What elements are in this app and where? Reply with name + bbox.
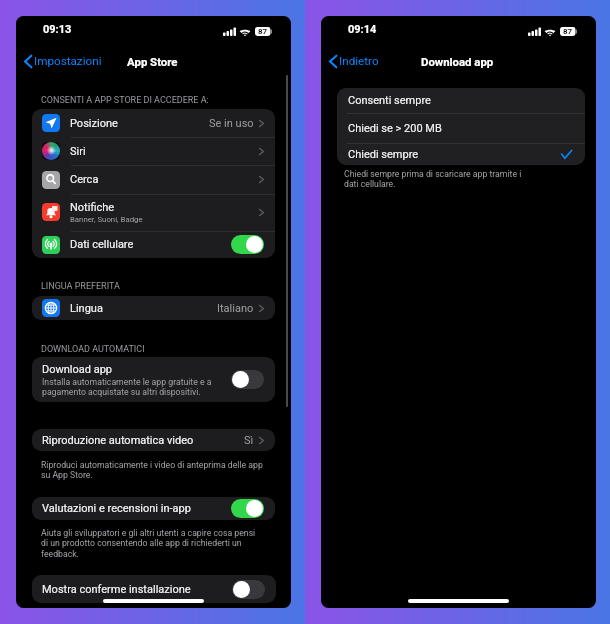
button[interactable]: Dati cellulare — [32, 231, 275, 258]
button[interactable]: Mostra conferme installazione — [32, 575, 276, 603]
staticText: Consenti sempre — [348, 94, 572, 107]
staticText: 09:13 — [43, 23, 72, 36]
staticText: App Store — [127, 55, 178, 68]
staticText: Cerca — [70, 173, 99, 186]
staticText: Siri — [70, 145, 86, 158]
button[interactable]: Valutazioni e recensioni in-app — [32, 497, 275, 520]
button[interactable]: On — [231, 499, 264, 518]
button[interactable]: Off — [231, 370, 264, 389]
button[interactable]: Back to Indietro — [327, 50, 382, 72]
button[interactable]: Download app — [32, 357, 275, 402]
button[interactable]: Consenti sempre — [337, 88, 585, 113]
staticText: Download app — [421, 55, 494, 68]
staticText: Chiedi sempre — [348, 148, 561, 161]
staticText: Download app — [42, 363, 113, 376]
button[interactable]: Off — [232, 580, 265, 599]
staticText: Riproduzione automatica video — [42, 434, 244, 447]
staticText: LINGUA PREFERITA — [41, 281, 120, 292]
button[interactable]: Chiedi se > 200 MB — [337, 113, 585, 143]
button[interactable]: Lingua — [32, 296, 275, 320]
staticText: Valutazioni e recensioni in-app — [42, 502, 231, 515]
button[interactable]: Siri — [32, 137, 275, 165]
staticText: Sì — [244, 434, 254, 447]
staticText: 09:14 — [348, 23, 377, 36]
button[interactable]: Notifiche — [32, 194, 275, 230]
staticText: Mostra conferme installazione — [42, 583, 232, 596]
staticText: Chiedi se > 200 MB — [348, 122, 572, 135]
button[interactable]: Cerca — [32, 165, 275, 194]
staticText: 87 — [563, 27, 573, 36]
staticText: Banner, Suoni, Badge — [70, 215, 143, 224]
staticText: Aiuta gli sviluppatori e gli altri utent… — [41, 528, 256, 559]
staticText: Chiedi sempre prima di scaricare app tra… — [344, 169, 522, 189]
staticText: 87 — [258, 27, 268, 36]
staticText: Impostazioni — [34, 54, 102, 68]
button[interactable]: Chiedi sempre — [337, 143, 585, 165]
staticText: Lingua — [70, 302, 103, 315]
staticText: Notifiche — [70, 201, 115, 214]
staticText: Dati cellulare — [70, 238, 134, 251]
button[interactable]: Riproduzione automatica video — [32, 429, 275, 451]
staticText: Posizione — [70, 117, 118, 130]
staticText: Installa automaticamente le app gratuite… — [42, 377, 212, 397]
staticText: Indietro — [339, 54, 379, 68]
button[interactable]: Back to Impostazioni — [22, 50, 105, 72]
staticText: Riproduci automaticamente i video di ant… — [41, 460, 263, 480]
staticText: DOWNLOAD AUTOMATICI — [41, 344, 145, 355]
button[interactable]: On — [231, 235, 264, 254]
staticText: CONSENTI A APP STORE DI ACCEDERE A: — [41, 95, 209, 106]
staticText: Italiano — [217, 302, 254, 315]
button[interactable]: Posizione — [32, 109, 275, 137]
staticText: Se in uso — [209, 117, 254, 130]
